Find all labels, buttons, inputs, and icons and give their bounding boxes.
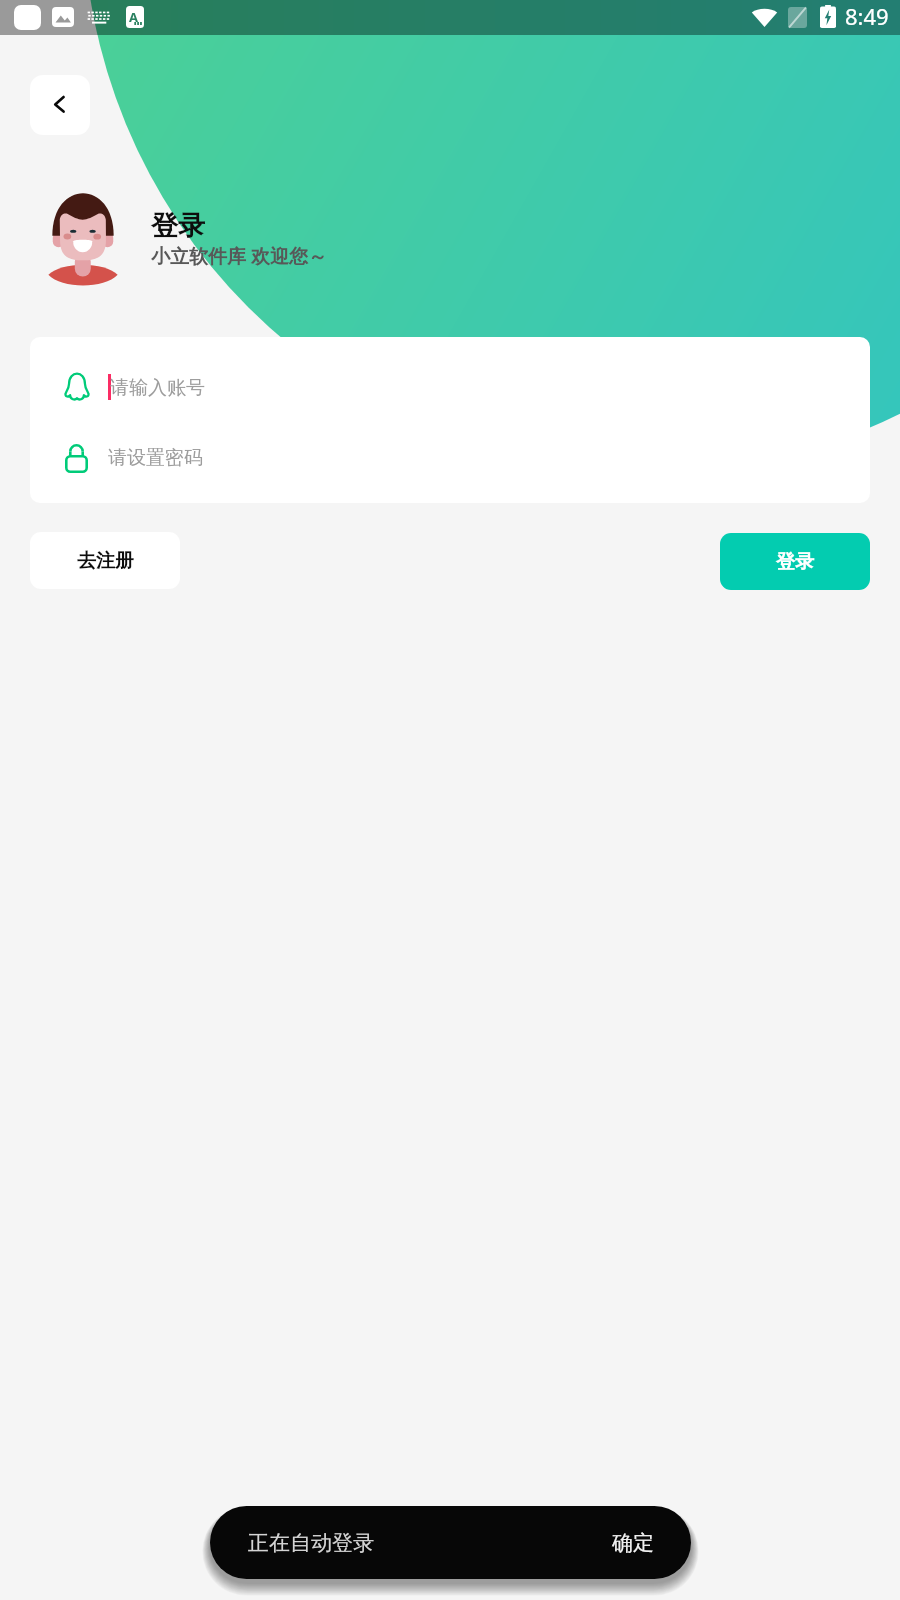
staticText: 小立软件库 欢迎您～	[151, 243, 327, 269]
button[interactable]: 去注册	[30, 532, 180, 589]
staticText: 确定	[612, 1530, 654, 1556]
staticText: 8:49	[845, 1, 889, 31]
button[interactable]: Back	[30, 75, 90, 135]
staticText: A	[129, 8, 138, 26]
staticText: 登录	[776, 550, 814, 574]
staticText: 请输入账号	[110, 376, 205, 400]
staticText: 去注册	[77, 549, 134, 573]
button[interactable]: 登录	[720, 533, 870, 590]
staticText: 登录	[151, 209, 205, 243]
button[interactable]: 确定	[575, 1514, 691, 1572]
button[interactable]: 请输入账号	[30, 337, 870, 420]
staticText: 正在自动登录	[248, 1530, 374, 1556]
staticText: 请设置密码	[108, 446, 203, 470]
button[interactable]: 请设置密码	[30, 420, 870, 503]
